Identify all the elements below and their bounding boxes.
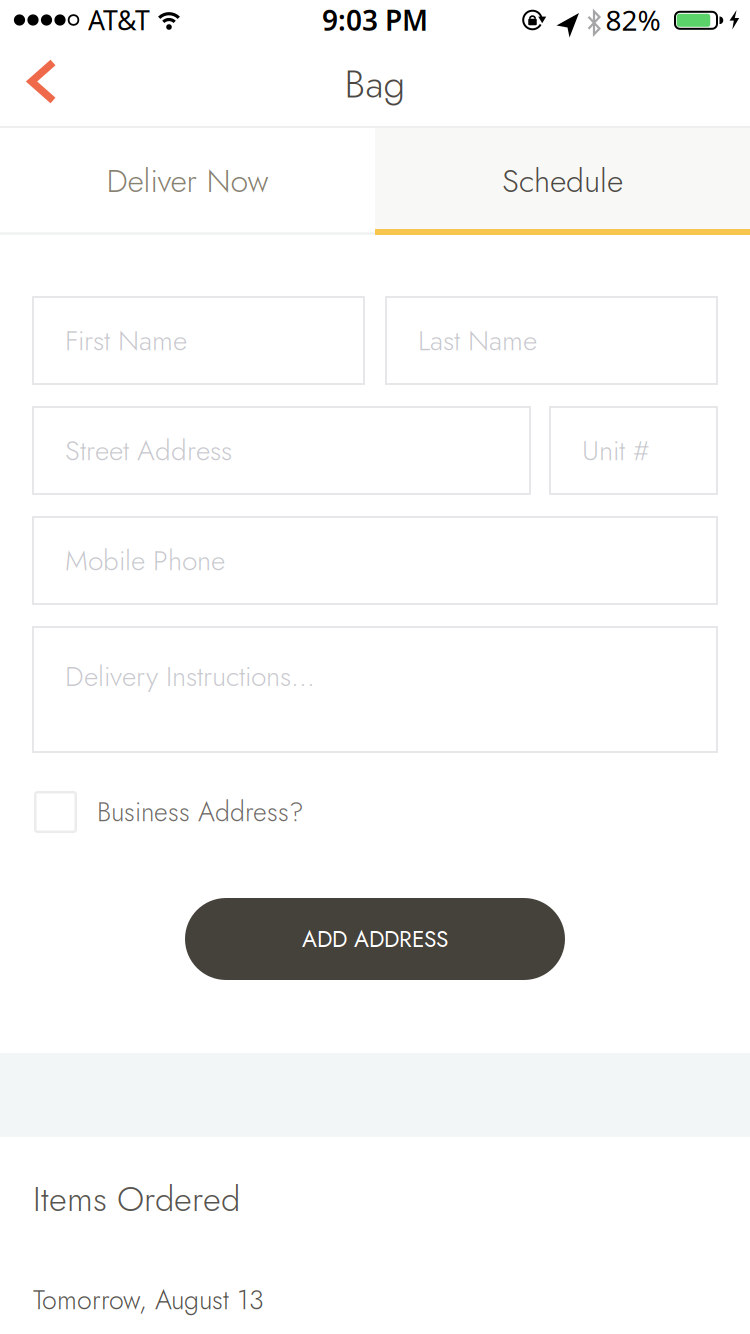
- staticText: Deliver Now: [106, 158, 268, 204]
- staticText: Business Address?: [97, 793, 304, 831]
- staticText: Schedule: [502, 158, 623, 204]
- button[interactable]: Schedule: [375, 130, 750, 232]
- staticText: 82%: [605, 1, 660, 39]
- staticText: Delivery Instructions...: [65, 656, 315, 696]
- staticText: Street Address: [65, 430, 232, 471]
- staticText: Mobile Phone: [65, 540, 225, 581]
- staticText: First Name: [65, 320, 187, 361]
- button[interactable]: Unit #: [549, 406, 718, 495]
- button[interactable]: First Name: [32, 296, 365, 385]
- button[interactable]: ADD ADDRESS: [185, 898, 565, 980]
- button[interactable]: Deliver Now: [0, 130, 375, 232]
- staticText: Last Name: [418, 320, 537, 361]
- button[interactable]: Business Address?: [34, 782, 750, 842]
- staticText: ADD ADDRESS: [302, 923, 448, 955]
- button[interactable]: Back: [29, 60, 59, 102]
- staticText: Bag: [344, 56, 405, 112]
- button[interactable]: Street Address: [32, 406, 531, 495]
- button[interactable]: Last Name: [385, 296, 718, 385]
- button[interactable]: Delivery Instructions...: [32, 626, 718, 753]
- button[interactable]: Mobile Phone: [32, 516, 718, 605]
- staticText: 9:03 PM: [322, 1, 428, 39]
- staticText: Items Ordered: [33, 1174, 240, 1224]
- staticText: AT&T: [88, 2, 150, 38]
- staticText: Tomorrow, August 13: [33, 1281, 264, 1319]
- staticText: Unit #: [582, 430, 650, 471]
